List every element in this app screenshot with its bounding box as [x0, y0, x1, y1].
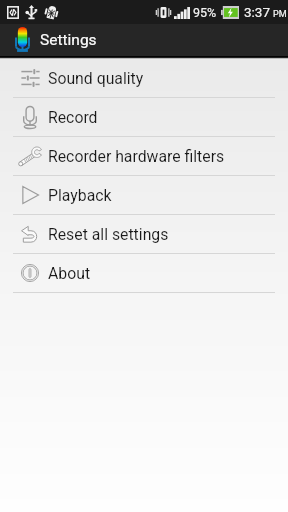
- staticText: Record: [48, 108, 98, 127]
- button[interactable]: About: [0, 254, 288, 292]
- staticText: 95%: [193, 5, 217, 20]
- staticText: PM: [273, 9, 287, 20]
- button[interactable]: Record: [0, 98, 288, 136]
- button[interactable]: Reset all settings: [0, 215, 288, 253]
- button[interactable]: Recorder hardware filters: [0, 137, 288, 175]
- staticText: Playback: [48, 186, 112, 205]
- staticText: About: [48, 264, 91, 283]
- staticText: Reset all settings: [48, 225, 169, 244]
- button[interactable]: Sound quality: [0, 59, 288, 97]
- staticText: Sound quality: [48, 69, 144, 88]
- staticText: Recorder hardware filters: [48, 147, 225, 166]
- button[interactable]: Playback: [0, 176, 288, 214]
- staticText: 3:37: [244, 4, 271, 20]
- staticText: Settings: [40, 31, 97, 49]
